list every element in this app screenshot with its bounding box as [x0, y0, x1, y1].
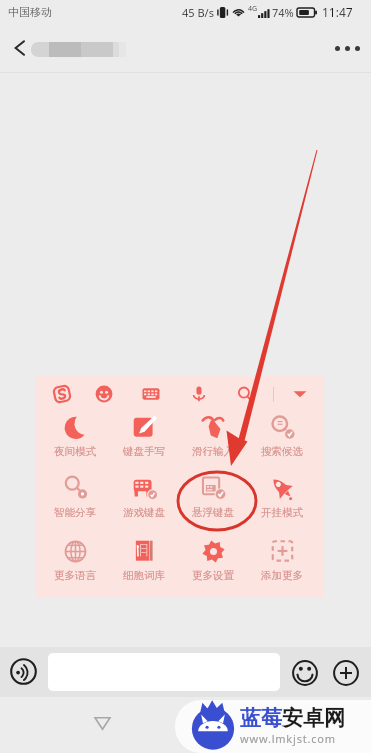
staticText: 搜索候选	[261, 445, 303, 458]
button[interactable]: More options	[323, 28, 371, 68]
button[interactable]: 搜索候选	[248, 414, 316, 462]
staticText: 45 B/s	[182, 5, 214, 20]
button[interactable]: kb	[138, 381, 164, 407]
staticText: 滑行输入	[192, 445, 234, 458]
staticText: 键盘手写	[123, 445, 165, 458]
staticText: 更多语言	[54, 569, 96, 582]
button[interactable]: 开挂模式	[248, 475, 316, 523]
button[interactable]: Add	[330, 657, 361, 688]
button[interactable]: 键盘手写	[110, 414, 178, 462]
button[interactable]: 细胞词库	[110, 538, 178, 586]
button[interactable]: search	[232, 381, 258, 407]
button[interactable]: 游戏键盘	[110, 475, 178, 523]
staticText: 中国移动	[8, 5, 52, 19]
staticText: 74%	[272, 5, 294, 20]
staticText: 4G	[248, 4, 258, 14]
staticText: 添加更多	[261, 569, 303, 582]
button[interactable]: emoji	[91, 381, 117, 407]
staticText: 11:47	[322, 4, 353, 20]
staticText: 开挂模式	[261, 506, 303, 519]
button[interactable]: 智能分享	[41, 475, 109, 523]
button[interactable]: Back	[0, 28, 40, 68]
button[interactable]: Voice input	[7, 655, 40, 688]
staticText: 蓝莓	[240, 705, 282, 731]
button[interactable]: Collapse	[287, 381, 313, 407]
button[interactable]: Back	[84, 704, 120, 740]
button[interactable]: Emoji	[289, 657, 320, 688]
staticText: 细胞词库	[123, 569, 165, 582]
staticText: 悬浮键盘	[192, 506, 234, 519]
staticText: 游戏键盘	[123, 506, 165, 519]
staticText: 更多设置	[192, 569, 234, 582]
button[interactable]: 夜间模式	[41, 414, 109, 462]
staticText: 夜间模式	[54, 445, 96, 458]
staticText: 智能分享	[54, 506, 96, 519]
staticText: 安卓网	[282, 705, 345, 731]
button[interactable]: mic	[186, 381, 212, 407]
button[interactable]: 滑行输入	[179, 414, 247, 462]
staticText: www.lmkjst.com	[240, 731, 336, 746]
button[interactable]: 添加更多	[248, 538, 316, 586]
button[interactable]: 更多语言	[41, 538, 109, 586]
button[interactable]: 悬浮键盘	[179, 475, 247, 523]
button[interactable]: 更多设置	[179, 538, 247, 586]
button[interactable]: s	[49, 381, 75, 407]
